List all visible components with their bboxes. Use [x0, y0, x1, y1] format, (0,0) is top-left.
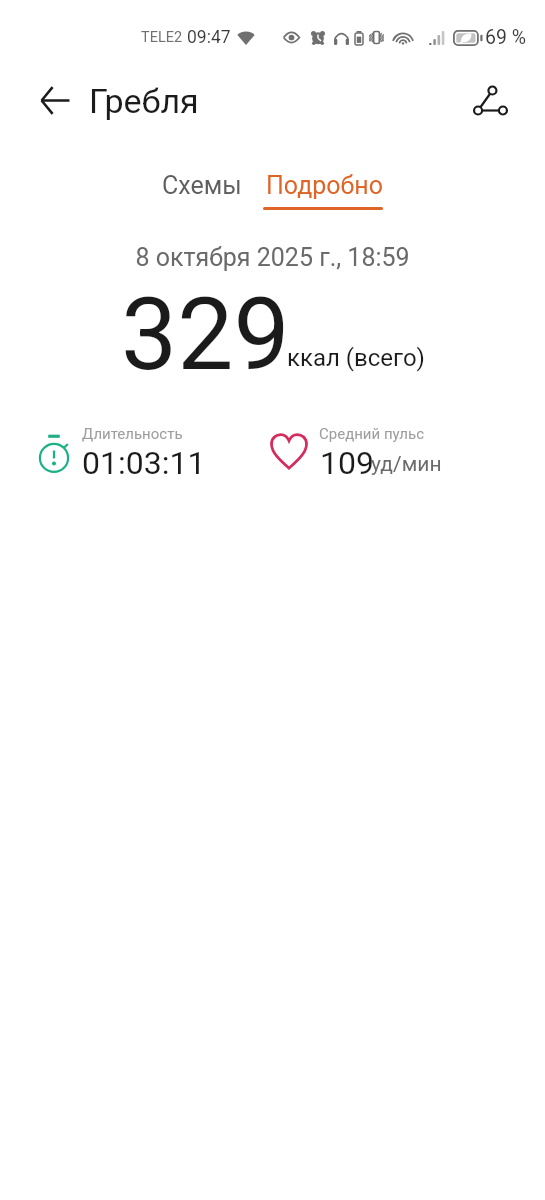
staticText: Средний пульс	[319, 425, 424, 443]
button[interactable]: Back	[31, 76, 79, 124]
staticText: Схемы	[162, 171, 242, 200]
staticText: Подробно	[266, 171, 383, 200]
button[interactable]: Схемы	[147, 163, 257, 208]
staticText: уд/мин	[371, 452, 442, 477]
staticText: 8 октября 2025 г., 18:59	[0, 243, 545, 272]
button[interactable]: Share	[466, 76, 514, 124]
staticText: 109	[320, 444, 374, 482]
button[interactable]: Подробно	[251, 163, 398, 208]
staticText: 69 %	[485, 26, 527, 49]
staticText: 329	[121, 276, 290, 393]
staticText: 09:47	[187, 27, 231, 48]
staticText: 01:03:11	[82, 444, 206, 482]
staticText: TELE2	[141, 29, 183, 46]
staticText: Гребля	[89, 81, 199, 121]
staticText: ккал (всего)	[287, 344, 425, 372]
staticText: Длительность	[82, 425, 183, 443]
